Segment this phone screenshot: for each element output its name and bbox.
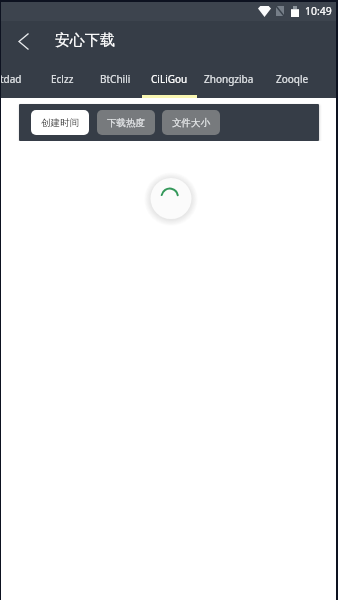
button[interactable]: Back — [11, 29, 35, 53]
staticText: 10:49 — [305, 4, 332, 18]
button[interactable]: 创建时间 — [31, 110, 89, 135]
staticText: tdad — [0, 72, 22, 86]
button[interactable]: Zhongziba — [195, 60, 263, 95]
staticText: 文件大小 — [172, 117, 210, 129]
button[interactable]: BtChili — [87, 60, 140, 95]
button[interactable]: tdad — [0, 60, 37, 95]
staticText: Eclzz — [51, 72, 74, 86]
button[interactable]: 文件大小 — [162, 110, 220, 135]
staticText: 安心下载 — [55, 31, 115, 50]
button[interactable]: 下载热度 — [97, 110, 155, 135]
staticText: CiLiGou — [151, 72, 188, 86]
staticText: Zooqle — [276, 72, 309, 86]
staticText: 创建时间 — [41, 117, 79, 129]
button[interactable]: Eclzz — [37, 60, 87, 95]
button[interactable]: CiLiGou — [140, 60, 195, 95]
staticText: Zhongziba — [204, 72, 254, 86]
staticText: BtChili — [100, 72, 131, 86]
button[interactable]: Zooqle — [263, 60, 324, 95]
staticText: 下载热度 — [107, 117, 145, 129]
